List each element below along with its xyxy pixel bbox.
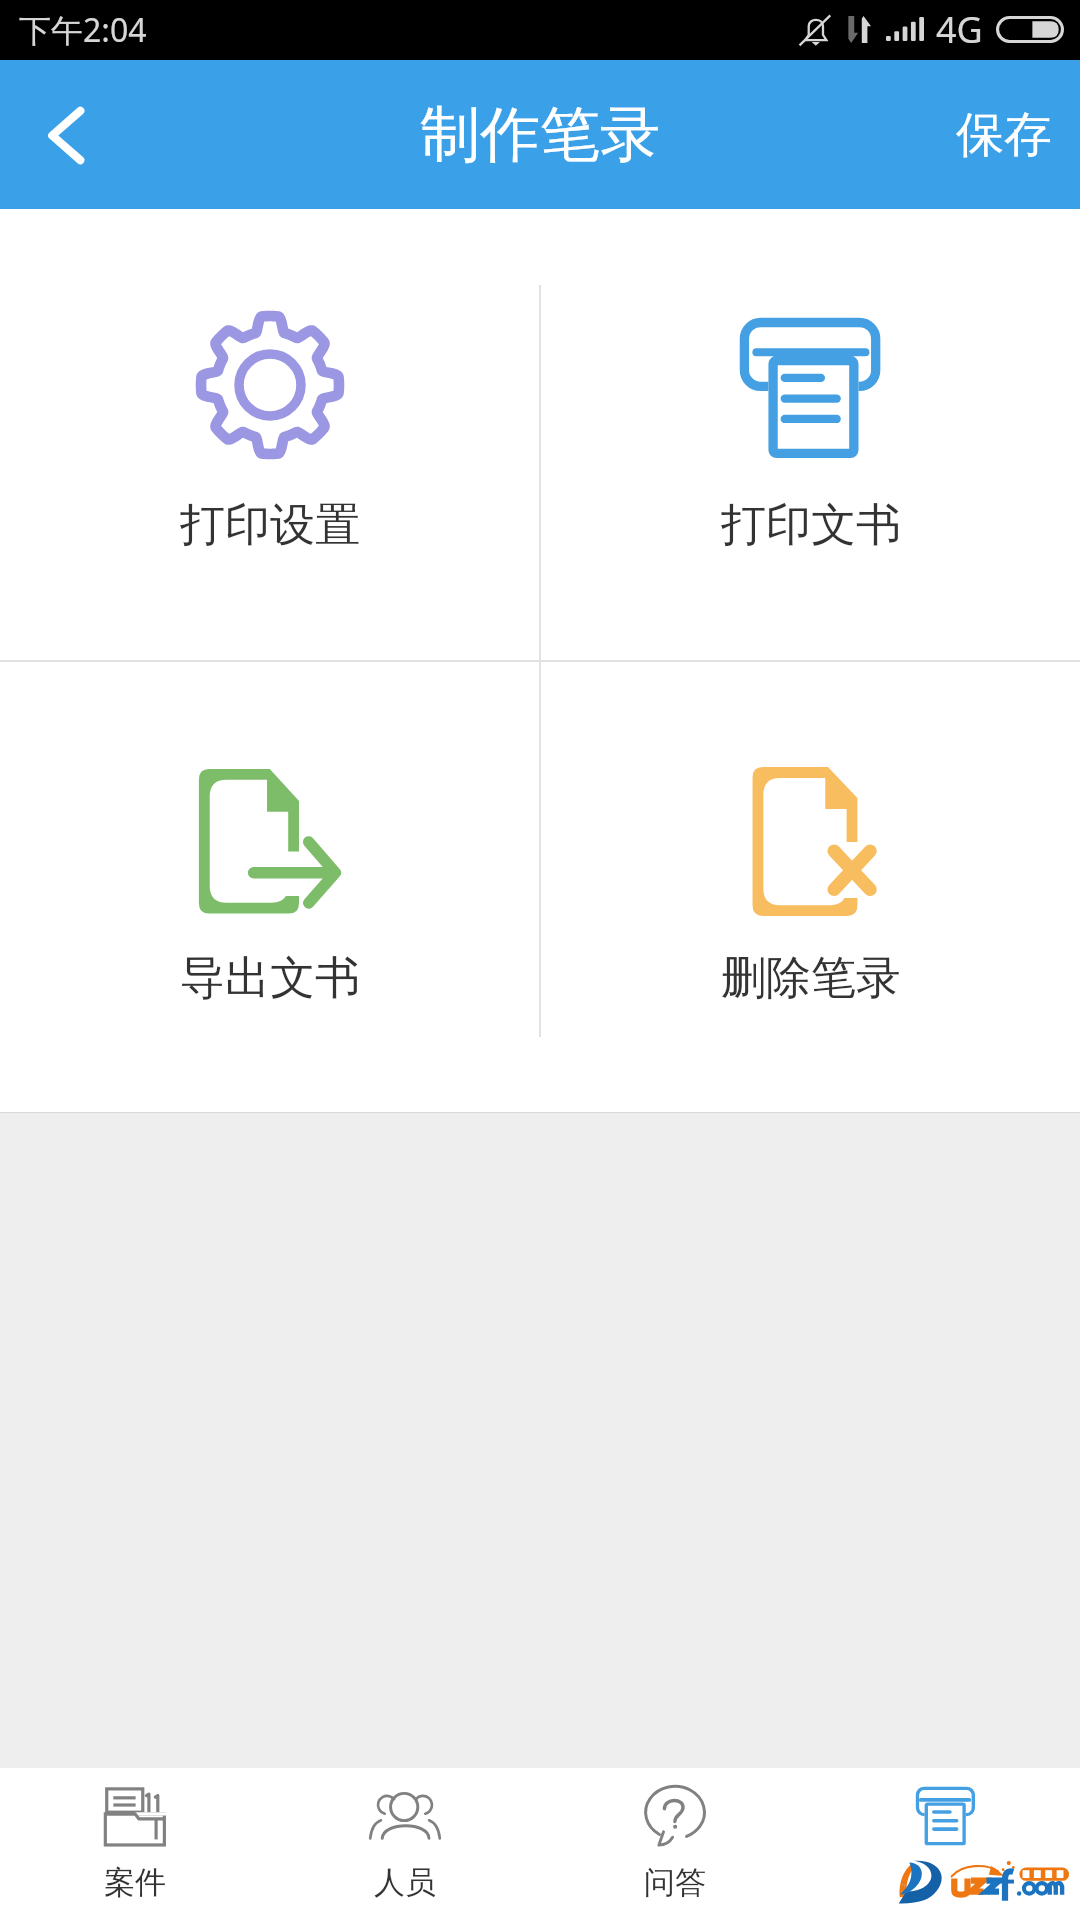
button[interactable]: 人员 (270, 1768, 540, 1920)
staticText: 打印文书 (721, 497, 901, 554)
button[interactable]: 打印文书 (541, 209, 1080, 660)
staticText: 下午2:04 (19, 8, 147, 52)
button[interactable]: 删除笔录 (541, 662, 1080, 1113)
button[interactable]: 案件 (0, 1768, 270, 1920)
button[interactable]: 导出文书 (0, 662, 539, 1113)
staticText: 保存 (956, 105, 1052, 165)
staticText: 问答 (644, 1863, 706, 1902)
button[interactable]: 问答 (540, 1768, 810, 1920)
button[interactable]: 打印设置 (0, 209, 539, 660)
staticText: 删除笔录 (721, 950, 901, 1007)
button[interactable]: 保存 (924, 60, 1080, 209)
staticText: 打印设置 (180, 497, 360, 554)
button[interactable]: 打印文书 (810, 1768, 1080, 1920)
button[interactable]: Back (0, 60, 130, 209)
staticText: 导出文书 (180, 950, 360, 1007)
staticText: 案件 (104, 1863, 166, 1902)
staticText: 制作笔录 (420, 97, 660, 173)
staticText: 4G (936, 5, 983, 54)
staticText: 人员 (374, 1863, 436, 1902)
